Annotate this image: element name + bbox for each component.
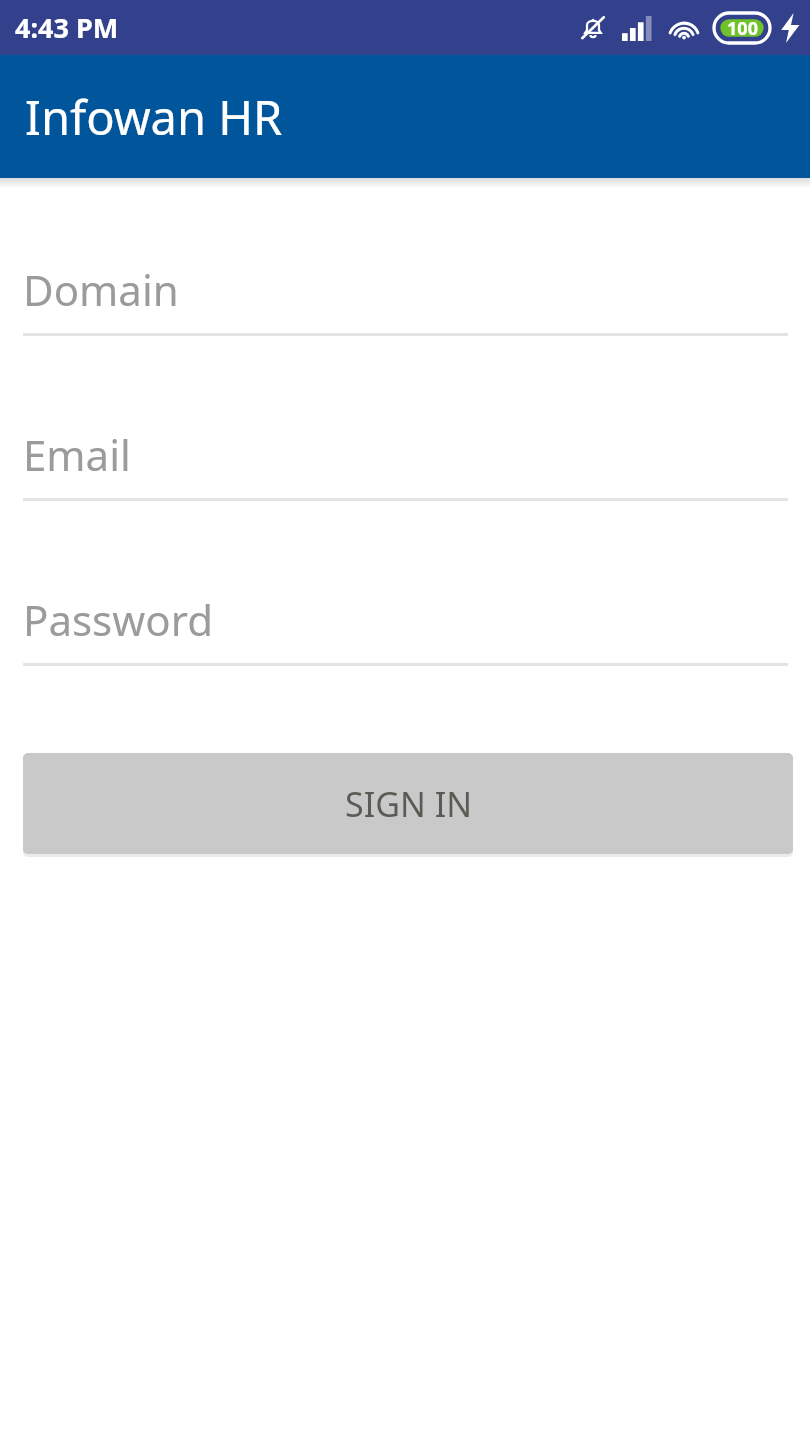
staticText: 100 xyxy=(727,16,758,41)
staticText: Domain xyxy=(23,261,179,318)
button[interactable]: Email xyxy=(23,426,788,501)
staticText: Infowan HR xyxy=(25,85,283,149)
button[interactable]: Domain xyxy=(23,261,788,336)
staticText: Email xyxy=(23,426,131,483)
staticText: 4:43 PM xyxy=(15,9,119,46)
staticText: Password xyxy=(23,591,213,648)
button[interactable]: Password xyxy=(23,591,788,666)
button[interactable]: SIGN IN xyxy=(23,753,793,854)
staticText: SIGN IN xyxy=(345,781,472,827)
